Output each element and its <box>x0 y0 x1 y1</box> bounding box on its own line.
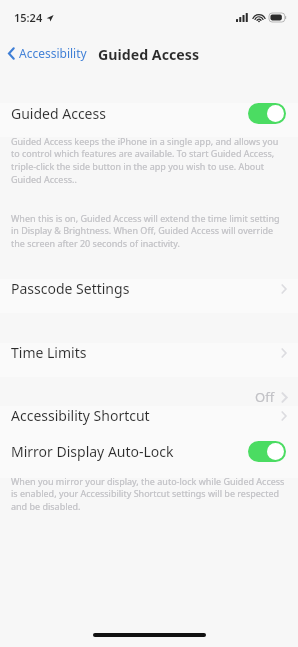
button[interactable]: Passcode Settings <box>0 279 298 313</box>
staticText: Time Limits <box>11 343 87 362</box>
button[interactable]: Accessibility <box>0 42 93 64</box>
staticText: Passcode Settings <box>11 279 130 298</box>
button[interactable]: Toggle <box>248 103 286 124</box>
staticText: Mirror Display Auto-Lock <box>11 442 174 461</box>
staticText: 15:24 <box>14 10 43 25</box>
button[interactable]: Time Limits <box>0 343 298 377</box>
staticText: Guided Access <box>98 45 200 64</box>
staticText: Off <box>255 388 275 406</box>
staticText: Accessibility <box>19 45 87 61</box>
button[interactable]: Guided Access <box>0 103 298 137</box>
button[interactable]: Mirror Display Auto-Lock <box>0 441 298 478</box>
staticText: When this is on, Guided Access will exte… <box>11 212 289 250</box>
staticText: Guided Access <box>11 104 106 123</box>
staticText: Accessibility Shortcut <box>11 406 150 425</box>
button[interactable]: Toggle <box>248 441 286 462</box>
staticText: When you mirror your display, the auto-l… <box>11 475 289 513</box>
button[interactable]: Accessibility Shortcut <box>0 406 298 441</box>
staticText: Guided Access keeps the iPhone in a sing… <box>11 135 289 186</box>
